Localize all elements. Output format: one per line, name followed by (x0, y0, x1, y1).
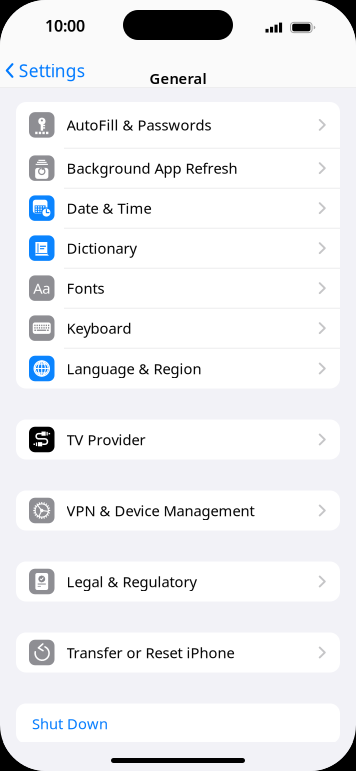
button[interactable]: Dictionary (16, 228, 340, 268)
staticText: Settings (19, 59, 85, 82)
staticText: Fonts (66, 278, 104, 298)
button[interactable]: TV Provider (16, 419, 340, 459)
staticText: General (149, 68, 206, 88)
button[interactable]: Transfer or Reset iPhone (16, 632, 340, 672)
staticText: Legal & Regulatory (66, 572, 196, 591)
staticText: Keyboard (66, 318, 131, 338)
staticText: Transfer or Reset iPhone (66, 643, 234, 662)
staticText: AutoFill & Passwords (66, 115, 211, 135)
button[interactable]: Background App Refresh (16, 148, 340, 188)
staticText: Dictionary (66, 238, 136, 258)
button[interactable]: Keyboard (16, 308, 340, 348)
staticText: Language & Region (66, 359, 201, 378)
button[interactable]: Language & Region (16, 348, 340, 388)
button[interactable]: Settings (0, 53, 85, 88)
staticText: Date & Time (66, 198, 151, 218)
staticText: Background App Refresh (66, 158, 237, 178)
staticText: VPN & Device Management (66, 501, 254, 520)
button[interactable]: AutoFill & Passwords (16, 102, 340, 148)
staticText: TV Provider (66, 430, 145, 449)
staticText: Aa (33, 278, 50, 298)
button[interactable]: Shut Down (0, 703, 356, 743)
button[interactable]: Legal & Regulatory (16, 561, 340, 601)
button[interactable]: VPN & Device Management (16, 490, 340, 530)
button[interactable]: Aa (16, 268, 340, 308)
staticText: Shut Down (32, 714, 108, 733)
staticText: 10:00 (45, 15, 85, 36)
button[interactable]: Date & Time (16, 188, 340, 228)
